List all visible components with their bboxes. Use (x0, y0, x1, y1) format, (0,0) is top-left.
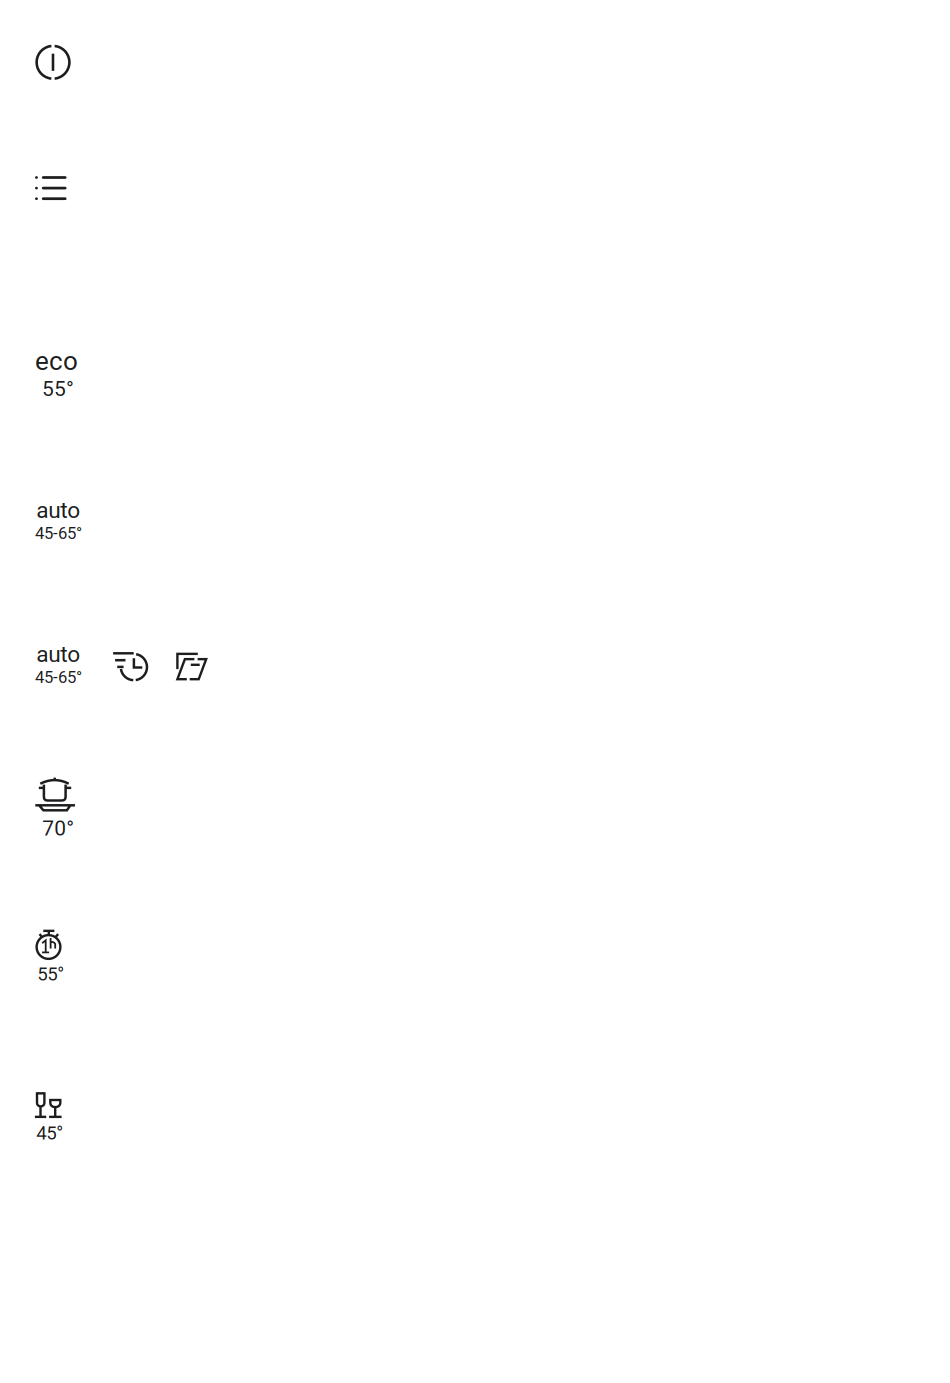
button[interactable]: 70° (35, 777, 75, 836)
staticText: 45-65° (35, 668, 82, 687)
button[interactable]: 55° (35, 930, 62, 982)
staticText: eco (35, 346, 78, 376)
button[interactable]: 45° (35, 1092, 62, 1140)
button[interactable]: Speed (113, 652, 148, 681)
staticText: 45° (36, 1122, 63, 1144)
button[interactable]: Power (34, 43, 72, 81)
staticText: 70° (42, 816, 74, 841)
button[interactable]: eco (35, 346, 78, 401)
staticText: 45-65° (35, 524, 82, 543)
button[interactable]: auto (35, 497, 82, 543)
button[interactable]: auto (35, 641, 82, 687)
staticText: auto (36, 641, 80, 668)
staticText: 55° (42, 376, 74, 401)
button[interactable]: Programme list (35, 176, 67, 200)
staticText: 55° (37, 963, 64, 985)
button[interactable]: Half load (177, 654, 207, 680)
staticText: auto (36, 497, 80, 524)
